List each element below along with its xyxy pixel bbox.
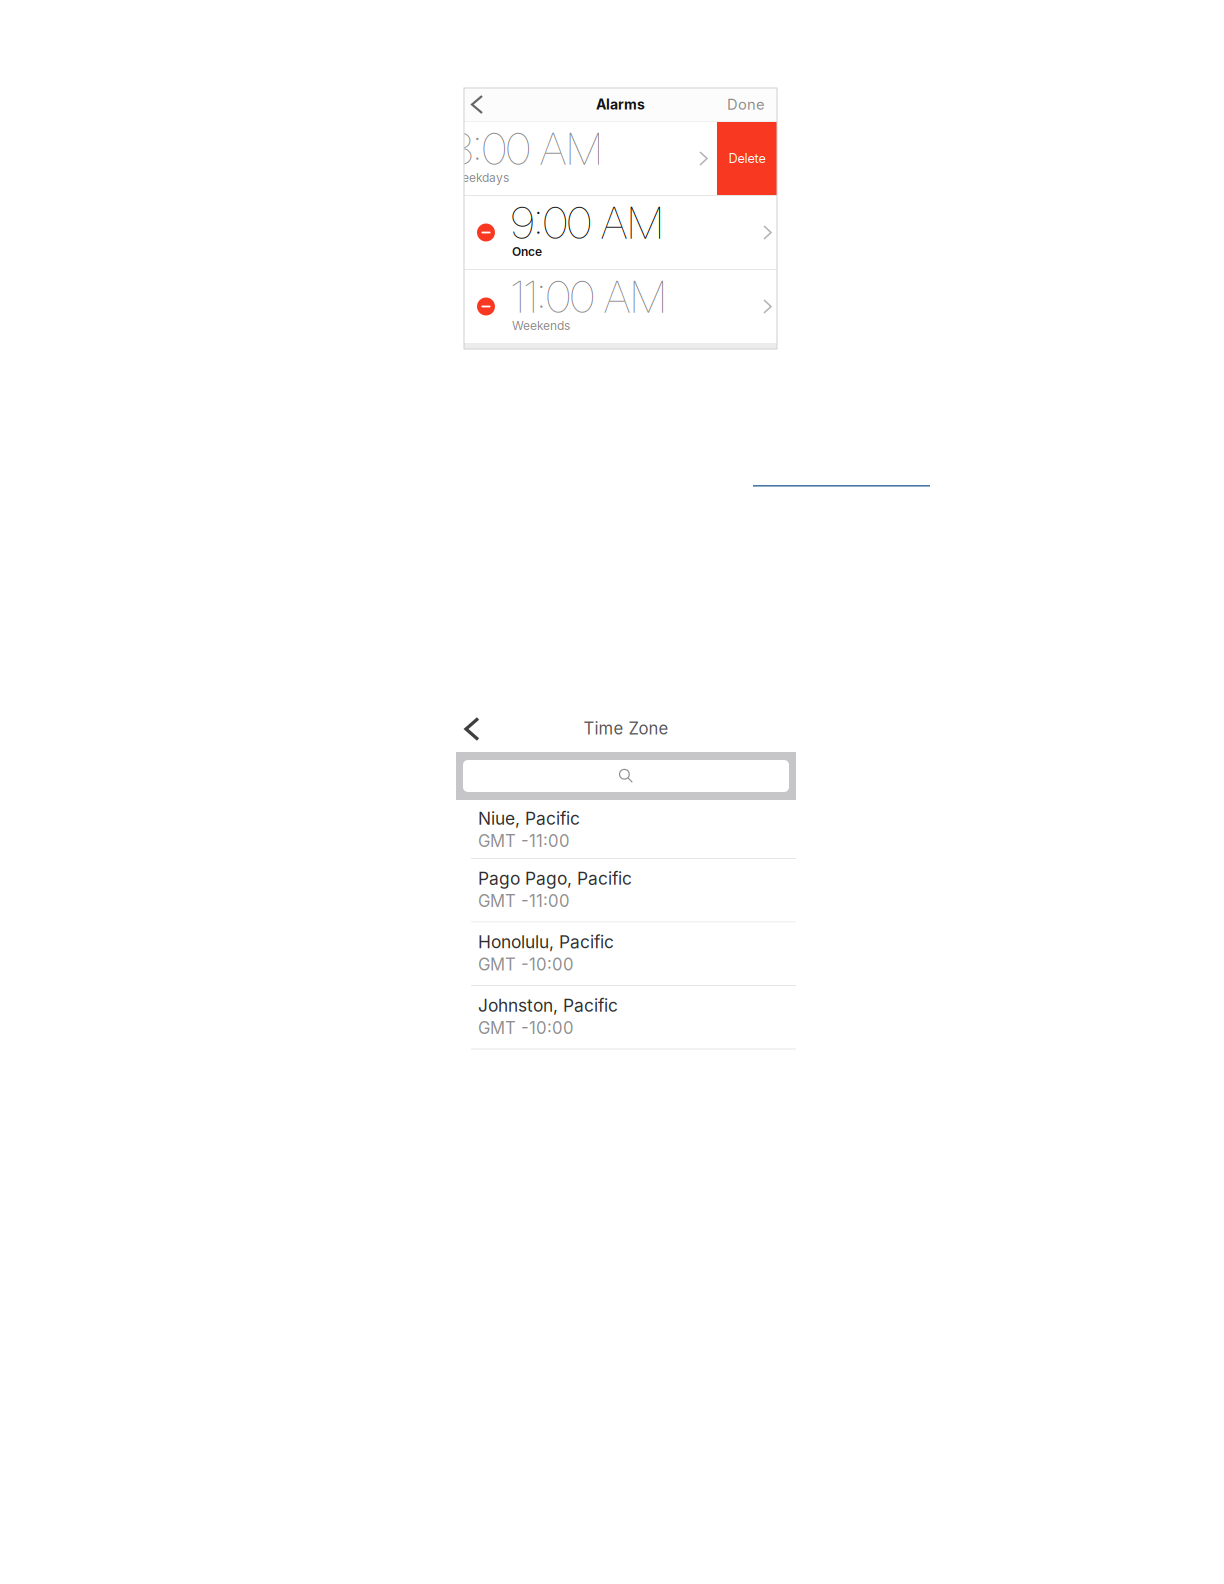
staticText: Honolulu, Pacific	[478, 931, 614, 952]
staticText: GMT -11:00	[478, 831, 570, 851]
button[interactable]: Back	[464, 88, 490, 121]
staticText: GMT -10:00	[478, 1018, 574, 1038]
staticText: Pago Pago, Pacific	[478, 868, 632, 889]
button[interactable]: Niue, Pacific	[456, 800, 796, 859]
staticText: Weekdays	[451, 170, 509, 185]
button[interactable]: Delete	[717, 122, 777, 195]
button[interactable]: 9:00 AM	[464, 196, 777, 269]
staticText: 8:00 AM	[450, 122, 603, 175]
staticText: Time Zone	[583, 718, 668, 739]
staticText: Delete	[728, 151, 765, 166]
staticText: Johnston, Pacific	[478, 995, 618, 1016]
button[interactable]: Done	[727, 88, 777, 121]
staticText: 9:00 AM	[511, 196, 664, 249]
staticText: GMT -11:00	[478, 891, 570, 911]
button[interactable]: Honolulu, Pacific	[456, 922, 796, 986]
staticText: Weekends	[512, 318, 570, 333]
staticText: Niue, Pacific	[478, 808, 580, 829]
staticText: Done	[727, 96, 765, 113]
button[interactable]: Johnston, Pacific	[456, 986, 796, 1049]
button[interactable]: Search	[456, 752, 796, 800]
staticText: 11:00 AM	[511, 270, 667, 323]
button[interactable]: Back	[456, 700, 488, 752]
button[interactable]: 11:00 AM	[464, 270, 777, 343]
staticText: Alarms	[596, 96, 645, 113]
staticText: GMT -10:00	[478, 954, 574, 975]
staticText: Once	[512, 244, 542, 259]
button[interactable]: Pago Pago, Pacific	[456, 859, 796, 922]
